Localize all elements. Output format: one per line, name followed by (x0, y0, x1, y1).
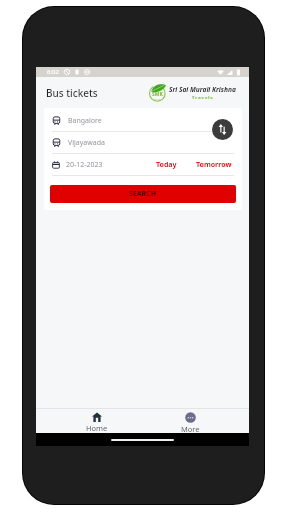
staticText: More (181, 424, 200, 434)
button[interactable]: Home (77, 409, 117, 434)
button[interactable]: Bangalore (44, 110, 242, 131)
button[interactable]: Tomorrow (196, 154, 232, 175)
button[interactable]: More (170, 409, 210, 434)
button[interactable]: 20-12-2023 (52, 154, 103, 175)
button[interactable]: Swap source and destination (212, 119, 233, 140)
staticText: travels (154, 98, 161, 101)
staticText: Today (156, 160, 177, 170)
staticText: Bangalore (68, 116, 102, 126)
staticText: Tomorrow (196, 160, 232, 170)
button[interactable]: SEARCH (50, 185, 236, 203)
staticText: Sri Sai Murali Krishna (169, 85, 236, 94)
staticText: SMK (152, 91, 163, 98)
staticText: Bus tickets (46, 86, 98, 100)
staticText: T r a v e l s (192, 95, 213, 100)
staticText: 6:02 (47, 68, 59, 76)
button[interactable]: Today (156, 154, 177, 175)
staticText: SEARCH (129, 189, 157, 199)
staticText: 20-12-2023 (66, 160, 103, 170)
staticText: Vijayawada (68, 138, 105, 148)
button[interactable]: Vijayawada (44, 132, 242, 153)
staticText: Home (86, 423, 108, 433)
